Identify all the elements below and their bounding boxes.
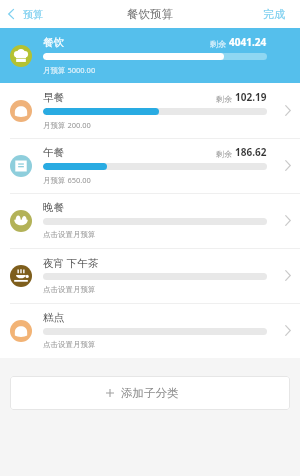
button[interactable]: 添加子分类 — [10, 376, 290, 410]
button[interactable]: 糕点 — [0, 303, 300, 358]
staticText: 102.19 — [235, 90, 267, 104]
staticText: 餐饮预算 — [127, 7, 173, 21]
staticText: 早餐 — [43, 91, 64, 104]
button[interactable]: 夜宵 下午茶 — [0, 248, 300, 303]
staticText: 点击设置月预算 — [43, 285, 96, 294]
staticText: 月预算 5000.00 — [43, 65, 96, 75]
staticText: 月预算 650.00 — [43, 175, 91, 185]
staticText: 月预算 200.00 — [43, 120, 91, 130]
staticText: 餐饮 — [43, 36, 64, 49]
staticText: 午餐 — [43, 146, 64, 159]
button[interactable]: 午餐 — [0, 138, 300, 193]
button[interactable]: 完成 — [253, 0, 300, 28]
staticText: 预算 — [23, 8, 43, 21]
button[interactable]: 预算 — [8, 0, 43, 28]
staticText: 剩余 — [210, 38, 229, 49]
button[interactable]: 早餐 — [0, 83, 300, 138]
staticText: 晚餐 — [43, 201, 64, 214]
staticText: 186.62 — [235, 145, 267, 159]
staticText: 添加子分类 — [121, 386, 179, 400]
staticText: 剩余 — [216, 148, 235, 159]
button[interactable]: 晚餐 — [0, 193, 300, 248]
staticText: 剩余 — [216, 93, 235, 104]
button[interactable]: 餐饮 — [0, 28, 300, 83]
staticText: 夜宵 下午茶 — [43, 256, 99, 270]
staticText: 点击设置月预算 — [43, 340, 96, 349]
staticText: 糕点 — [43, 311, 64, 324]
staticText: 完成 — [263, 7, 285, 21]
staticText: 4041.24 — [229, 35, 267, 49]
staticText: 点击设置月预算 — [43, 230, 96, 239]
